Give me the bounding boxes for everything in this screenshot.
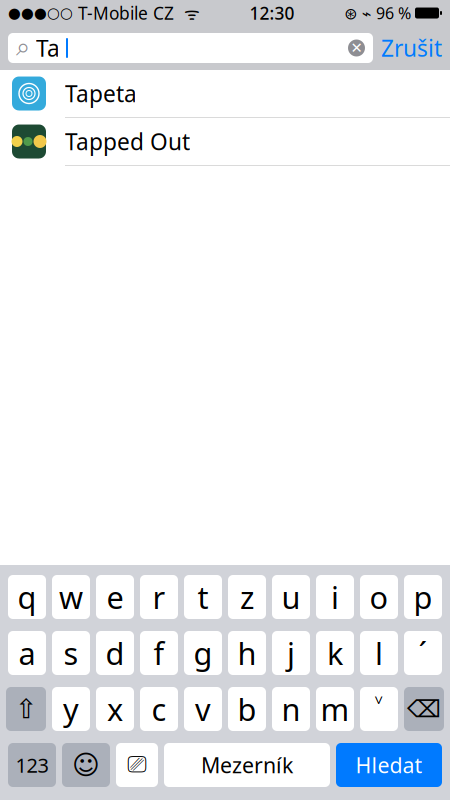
staticText: ⎚ [127,753,146,777]
button[interactable]: ⌕ [8,33,373,63]
staticText: d [105,633,124,673]
staticText: y [63,689,79,729]
button[interactable]: c [140,687,178,731]
staticText: Zrušit [381,33,442,63]
staticText: k [327,633,343,673]
staticText: v [195,689,211,729]
staticText: q [17,577,36,617]
button[interactable]: Zrušit [381,33,442,63]
staticText: g [193,633,212,673]
button[interactable]: s [52,631,90,675]
button[interactable]: Delete [404,687,444,731]
button[interactable]: n [272,687,310,731]
staticText: Mezerník [201,751,293,779]
button[interactable]: w [52,575,90,619]
staticText: ⇧ [15,694,37,724]
button[interactable]: i [316,575,354,619]
staticText: f [153,633,164,673]
staticText: Hledat [355,751,422,779]
button[interactable]: z [228,575,266,619]
staticText: i [331,577,339,617]
staticText: c [151,689,166,729]
button[interactable]: g [184,631,222,675]
staticText: ⌫ [407,695,441,723]
staticText: w [59,577,83,617]
staticText: e [106,577,123,617]
button[interactable]: Dictate [116,743,158,787]
staticText: ⊛ ⌁ 96 % [344,2,411,24]
staticText: o [369,577,388,617]
staticText: ˅ [374,689,383,729]
button[interactable]: u [272,575,310,619]
button[interactable]: o [360,575,398,619]
staticText: ✕ [350,40,362,56]
staticText: ●●●○○ [8,5,73,21]
button[interactable]: v [184,687,222,731]
button[interactable]: x [96,687,134,731]
button[interactable]: Shift [6,687,46,731]
staticText: 12:30 [249,1,294,24]
staticText: ´ [418,633,427,673]
button[interactable]: m [316,687,354,731]
staticText: j [287,633,295,673]
staticText: r [152,577,165,617]
button[interactable]: f [140,631,178,675]
button[interactable]: e [96,575,134,619]
button[interactable]: j [272,631,310,675]
staticText: m [320,689,349,729]
button[interactable]: Mezerník [164,743,330,787]
staticText: 123 [15,752,48,778]
button[interactable]: k [316,631,354,675]
button[interactable]: Hledat [336,743,442,787]
button[interactable]: Numbers [8,743,56,787]
button[interactable]: Emoji [62,743,110,787]
staticText: n [281,689,300,729]
button[interactable]: r [140,575,178,619]
button[interactable]: b [228,687,266,731]
staticText: s [63,633,78,673]
staticText: x [107,689,123,729]
button[interactable]: ´ [404,631,442,675]
button[interactable]: a [8,631,46,675]
staticText: z [240,577,254,617]
button[interactable]: t [184,575,222,619]
button[interactable]: q [8,575,46,619]
staticText: h [237,633,256,673]
staticText: Ta [36,33,60,63]
button[interactable]: Tapeta [0,70,450,118]
staticText: l [375,633,383,673]
staticText: a [18,633,35,673]
staticText: b [237,689,256,729]
staticText: ᯤ [174,1,200,24]
button[interactable]: d [96,631,134,675]
staticText: T-Mobile CZ [73,1,174,24]
staticText: u [281,577,300,617]
button[interactable]: p [404,575,442,619]
staticText: Tapeta [65,78,137,108]
button[interactable]: Tapped Out [0,118,450,166]
button[interactable]: y [52,687,90,731]
button[interactable]: h [228,631,266,675]
button[interactable]: l [360,631,398,675]
staticText: ☺ [72,750,100,780]
staticText: p [413,577,432,617]
staticText: t [197,577,208,617]
staticText: ⌕ [16,36,30,60]
button[interactable]: ˅ [360,687,398,731]
staticText: Tapped Out [65,126,190,156]
